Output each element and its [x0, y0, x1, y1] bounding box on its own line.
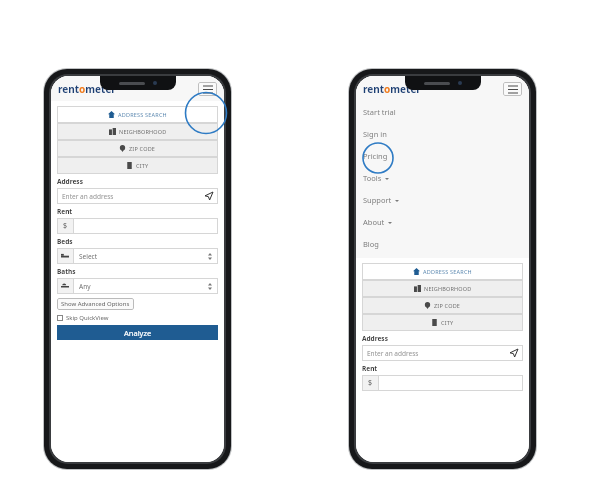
button[interactable]: Open menu	[198, 82, 217, 96]
staticText: Blog	[363, 239, 379, 249]
button[interactable]: ADDRESS SEARCH	[57, 106, 218, 123]
staticText: $	[368, 378, 373, 388]
staticText: Rent	[57, 207, 73, 216]
staticText: NEIGHBORHOOD	[119, 128, 167, 135]
button[interactable]: Start trial	[356, 101, 529, 123]
other: Use my location	[504, 345, 523, 361]
staticText: NEIGHBORHOOD	[424, 285, 472, 292]
staticText: Select	[79, 252, 208, 261]
staticText: ZIP CODE	[434, 302, 461, 309]
button[interactable]: Show Advanced Options	[61, 298, 130, 310]
staticText: Skip QuickView	[66, 314, 109, 322]
button[interactable]: Any	[57, 278, 218, 294]
button[interactable]: NEIGHBORHOOD	[362, 280, 523, 297]
button[interactable]: $	[362, 375, 523, 391]
button[interactable]: CITY	[362, 314, 523, 331]
staticText: CITY	[136, 162, 149, 169]
staticText: Start trial	[363, 107, 396, 117]
staticText: About	[363, 217, 385, 227]
staticText: Rent	[362, 364, 378, 373]
staticText: Address	[57, 177, 83, 186]
staticText: Pricing	[363, 151, 388, 161]
button[interactable]: Enter an address	[57, 188, 218, 204]
button[interactable]: Tools	[356, 167, 529, 189]
button[interactable]: ZIP CODE	[362, 297, 523, 314]
staticText: Enter an address	[367, 349, 504, 358]
button[interactable]: NEIGHBORHOOD	[57, 123, 218, 140]
staticText: ADDRESS SEARCH	[423, 268, 472, 275]
button[interactable]: Open menu	[503, 82, 522, 96]
button[interactable]: Select	[57, 248, 218, 264]
button[interactable]: ZIP CODE	[57, 140, 218, 157]
staticText: Sign in	[363, 129, 387, 139]
button[interactable]: Support	[356, 189, 529, 211]
other: Use my location	[199, 188, 218, 204]
staticText: ZIP CODE	[129, 145, 156, 152]
button[interactable]: Sign in	[356, 123, 529, 145]
button[interactable]: About	[356, 211, 529, 233]
button[interactable]: Analyze	[57, 325, 218, 340]
button[interactable]: $	[57, 218, 218, 234]
button[interactable]: Skip QuickView	[57, 314, 109, 322]
button[interactable]: Blog	[356, 233, 529, 255]
button[interactable]: Enter an address	[362, 345, 523, 361]
staticText: Analyze	[124, 328, 152, 338]
staticText: Address	[362, 334, 388, 343]
staticText: Tools	[363, 173, 382, 183]
staticText: Baths	[57, 267, 76, 276]
staticText: Support	[363, 195, 392, 205]
staticText: Enter an address	[62, 192, 199, 201]
staticText: Any	[79, 282, 208, 291]
staticText: ADDRESS SEARCH	[118, 111, 167, 118]
staticText: $	[63, 221, 68, 231]
button[interactable]: ADDRESS SEARCH	[362, 263, 523, 280]
staticText: rentometer	[363, 82, 421, 96]
staticText: Show Advanced Options	[61, 300, 130, 308]
button[interactable]: CITY	[57, 157, 218, 174]
button[interactable]: Pricing	[356, 145, 529, 167]
staticText: CITY	[441, 319, 454, 326]
staticText: rentometer	[58, 82, 116, 96]
staticText: Beds	[57, 237, 73, 246]
